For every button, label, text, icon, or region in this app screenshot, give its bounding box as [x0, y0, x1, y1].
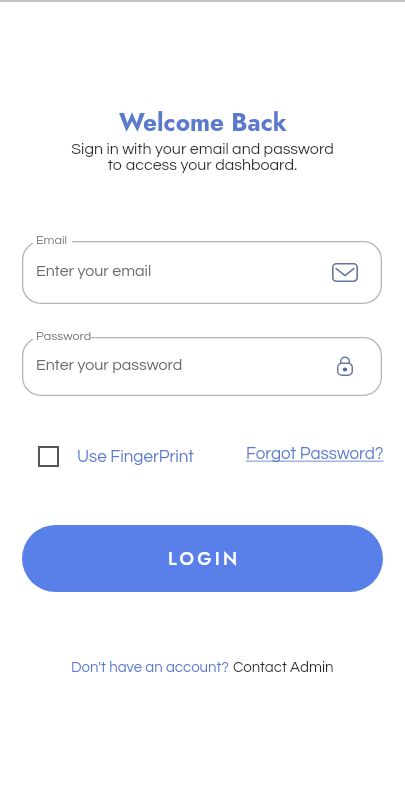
staticText: Email	[36, 234, 68, 247]
other: Password	[337, 357, 353, 376]
button[interactable]: Email	[22, 241, 382, 304]
staticText: Enter your email	[36, 263, 152, 279]
button[interactable]: LOGIN	[22, 525, 383, 592]
button[interactable]: Forgot Password?	[243, 445, 387, 463]
staticText: Password	[36, 330, 92, 343]
staticText: LOGIN	[168, 546, 241, 572]
staticText: Enter your password	[36, 357, 183, 373]
staticText: Sign in with your email and password to …	[71, 141, 334, 173]
staticText: Welcome Back	[119, 105, 287, 140]
button[interactable]: Password	[22, 337, 382, 396]
staticText: Use FingerPrint	[77, 448, 194, 466]
other: Email	[332, 263, 358, 282]
button[interactable]: Contact Admin	[233, 660, 334, 675]
staticText: Forgot Password?	[246, 445, 384, 463]
button[interactable]: Don't have an account?	[71, 660, 233, 675]
button[interactable]: Use FingerPrint	[34, 442, 198, 471]
